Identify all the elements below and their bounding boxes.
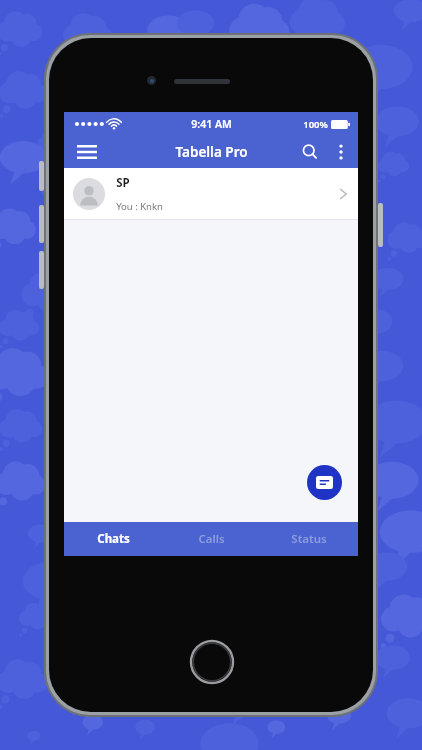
staticText: Calls xyxy=(198,531,225,547)
button[interactable]: Chats xyxy=(64,522,162,556)
staticText: 9:41 AM xyxy=(191,117,232,131)
staticText: Status xyxy=(291,531,327,547)
staticText: Chats xyxy=(97,531,130,547)
button[interactable]: Status xyxy=(260,522,358,556)
staticText: SP xyxy=(116,175,130,191)
button[interactable]: SP xyxy=(64,168,358,220)
button[interactable]: New chat xyxy=(307,465,342,500)
staticText: Tabella Pro xyxy=(175,143,248,161)
staticText: 100% xyxy=(303,118,328,131)
button[interactable]: More options xyxy=(326,137,356,167)
button[interactable]: Open navigation menu xyxy=(70,136,104,168)
button[interactable]: Calls xyxy=(162,522,260,556)
button[interactable]: Search xyxy=(294,136,326,168)
staticText: You : Knkn xyxy=(116,200,163,213)
